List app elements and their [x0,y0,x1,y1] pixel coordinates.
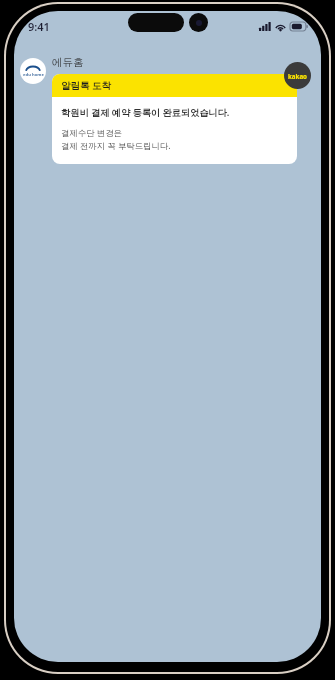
staticText: 에듀홈 [52,56,84,69]
staticText: 알림톡 도착 [61,79,111,92]
staticText: 결제 전까지 꼭 부탁드립니다. [61,140,171,151]
staticText: 결제수단 변경은 [61,127,122,138]
staticText: edu home [23,72,44,78]
button[interactable]: 에듀홈 프로필 [20,58,46,84]
staticText: 학원비 결제 예약 등록이 완료되었습니다. [61,106,230,119]
staticText: 9:41 [28,19,50,34]
button[interactable]: 알림톡 도착 [52,74,297,164]
button[interactable]: kakao [284,62,311,89]
staticText: kakao [288,72,307,80]
